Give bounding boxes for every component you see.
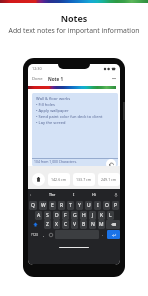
staticText: V [73, 221, 77, 228]
button[interactable]: , [40, 230, 47, 239]
staticText: B [82, 221, 86, 228]
staticText: S [46, 212, 49, 219]
button[interactable]: C [62, 220, 69, 229]
button[interactable]: Emoji [47, 230, 55, 239]
button[interactable]: 133.7 cm [73, 173, 95, 186]
staticText: • Apply wallpaper [36, 108, 69, 113]
button[interactable]: P [112, 201, 119, 210]
staticText: ?123 [31, 233, 38, 237]
button[interactable]: Voice input [113, 192, 118, 197]
button[interactable]: R [58, 201, 65, 210]
button[interactable]: 142.6 cm [48, 173, 70, 186]
staticText: › [30, 192, 32, 197]
staticText: Add text notes for important information [0, 26, 148, 35]
button[interactable]: K [98, 211, 105, 220]
button[interactable]: N [89, 220, 96, 229]
staticText: The [49, 192, 56, 197]
button[interactable]: M [98, 220, 105, 229]
button[interactable]: Q [29, 201, 37, 210]
staticText: A [37, 212, 41, 219]
staticText: I [73, 192, 75, 197]
button[interactable]: Done [32, 76, 43, 82]
staticText: 133.7 cm [76, 177, 92, 182]
staticText: , [43, 232, 45, 237]
staticText: H [82, 212, 86, 219]
button[interactable]: Y [76, 201, 83, 210]
button[interactable]: 249.1 cm [98, 173, 120, 186]
button[interactable]: L [107, 211, 114, 220]
staticText: M [99, 221, 104, 228]
staticText: • Lay the screed [36, 120, 66, 125]
staticText: F [64, 212, 67, 219]
staticText: O [105, 202, 109, 209]
button[interactable]: O [103, 201, 110, 210]
button[interactable]: E [49, 201, 56, 210]
button[interactable]: X [53, 220, 60, 229]
button[interactable]: W [39, 201, 47, 210]
button[interactable]: J [89, 211, 96, 220]
staticText: U [87, 202, 91, 209]
button[interactable]: Clipboard [32, 173, 45, 186]
staticText: 104 from 1,000 Characters. [34, 159, 77, 164]
staticText: . [102, 232, 104, 237]
staticText: J [92, 212, 94, 219]
button[interactable]: Backspace [106, 220, 120, 229]
button[interactable]: I [94, 201, 101, 210]
staticText: W [41, 202, 46, 209]
button[interactable]: A [35, 211, 42, 220]
button[interactable]: V [71, 220, 78, 229]
button[interactable]: G [71, 211, 78, 220]
button[interactable]: ?123 [28, 230, 40, 239]
staticText: • Send paint color fun deck to client [36, 114, 103, 119]
staticText: Z [46, 221, 49, 228]
staticText: Wall & floor works [36, 96, 71, 101]
staticText: D [55, 212, 59, 219]
button[interactable]: Undo [106, 159, 116, 169]
button[interactable]: T [67, 201, 74, 210]
staticText: G [73, 212, 77, 219]
button[interactable]: More options [111, 76, 116, 81]
staticText: 142.6 cm [51, 177, 67, 182]
button[interactable]: F [62, 211, 69, 220]
button[interactable]: Z [44, 220, 51, 229]
staticText: Note 1 [48, 76, 64, 82]
staticText: N [91, 221, 95, 228]
staticText: R [60, 202, 64, 209]
button[interactable]: The [49, 192, 56, 197]
staticText: L [109, 212, 112, 219]
button[interactable]: B [80, 220, 87, 229]
button[interactable]: H [80, 211, 87, 220]
staticText: K [100, 212, 104, 219]
button[interactable]: D [53, 211, 60, 220]
button[interactable]: S [44, 211, 51, 220]
button[interactable]: Hi [92, 192, 96, 197]
staticText: Q [31, 202, 35, 209]
button[interactable]: U [85, 201, 92, 210]
staticText: X [55, 221, 58, 228]
staticText: Done [32, 76, 43, 82]
staticText: 249.1 cm [101, 177, 117, 182]
staticText: E [51, 202, 54, 209]
staticText: • Fill holes [36, 102, 55, 107]
staticText: T [69, 202, 72, 209]
button[interactable]: Enter [107, 230, 120, 239]
staticText: Y [78, 202, 81, 209]
button[interactable]: . [99, 230, 107, 239]
staticText: I [97, 202, 99, 209]
staticText: 12:30 [32, 66, 42, 71]
staticText: C [64, 221, 68, 228]
staticText: Hi [92, 192, 96, 197]
button[interactable]: I [73, 192, 75, 197]
staticText: P [114, 202, 118, 209]
button[interactable]: Shift [28, 220, 43, 229]
staticText: Notes [0, 12, 148, 24]
